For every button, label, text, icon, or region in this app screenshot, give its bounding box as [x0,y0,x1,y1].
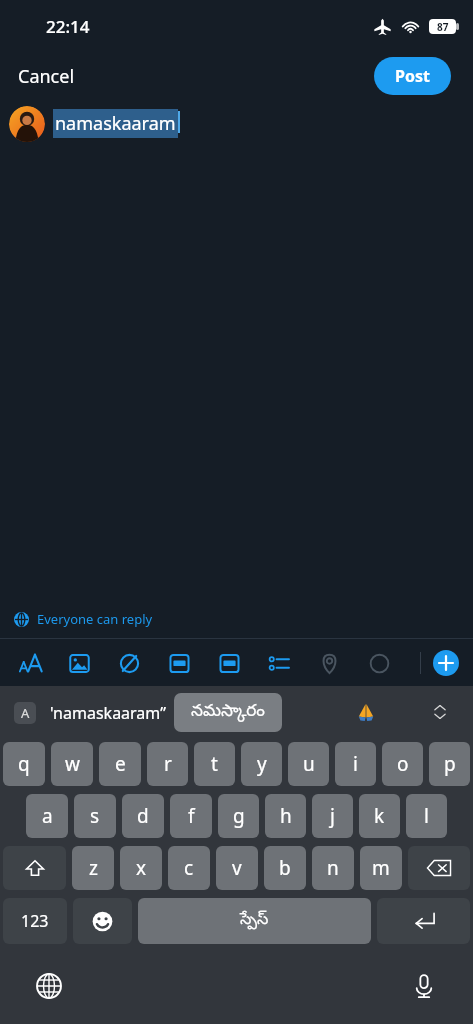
button[interactable]: 123 [3,898,67,944]
button[interactable]: g [218,794,259,838]
staticText: r [164,751,172,777]
button[interactable]: d [122,794,164,838]
button[interactable]: A [14,702,36,724]
staticText: o [397,751,409,777]
staticText: z [89,855,98,881]
staticText: namaskaaram [55,111,176,136]
staticText: l [424,803,429,829]
staticText: నమస్కారం [191,701,265,724]
staticText: f [188,803,195,829]
button[interactable]: Everyone can reply [0,602,473,638]
button[interactable]: i [335,742,376,786]
staticText: Cancel [18,64,75,89]
staticText: y [257,751,267,777]
button[interactable]: l [406,794,447,838]
staticText: 123 [21,910,49,932]
button[interactable]: Emoji suggestion [354,700,378,724]
button[interactable]: p [429,742,470,786]
button[interactable]: నమస్కారం [174,693,282,732]
staticText: 'namaskaaram” [50,702,166,724]
button[interactable]: m [360,846,402,890]
staticText: b [279,855,291,881]
staticText: Post [395,65,430,87]
button[interactable]: t [194,742,235,786]
staticText: e [115,751,126,777]
button[interactable]: Cancel [0,56,93,97]
staticText: p [444,751,456,777]
button[interactable]: Go live [154,641,204,685]
button[interactable]: q [3,742,45,786]
button[interactable]: k [359,794,400,838]
button[interactable]: Enter [377,898,470,944]
button[interactable]: Add poll [254,641,304,685]
button[interactable]: y [241,742,282,786]
button[interactable]: z [72,846,114,890]
staticText: s [90,803,100,829]
staticText: k [374,803,385,829]
button[interactable]: j [312,794,353,838]
button[interactable]: Add photo [54,641,104,685]
button[interactable]: Backspace [408,846,470,890]
staticText: v [232,855,242,881]
button[interactable]: a [26,794,68,838]
staticText: j [330,803,335,829]
button[interactable]: Add location [304,641,354,685]
staticText: c [184,855,194,881]
staticText: i [353,751,358,777]
staticText: a [42,803,53,829]
staticText: స్పేస్ [240,910,269,932]
button[interactable]: Schedule [354,641,404,685]
button[interactable]: w [51,742,93,786]
staticText: g [233,803,245,829]
staticText: d [137,803,149,829]
button[interactable]: Add sticker [104,641,154,685]
button[interactable]: f [170,794,212,838]
button[interactable]: o [382,742,423,786]
staticText: 22:14 [46,15,90,38]
staticText: m [372,855,390,881]
staticText: w [65,751,80,777]
button[interactable]: s [74,794,116,838]
button[interactable]: h [265,794,306,838]
staticText: q [18,751,30,777]
button[interactable]: Add GIF [204,641,254,685]
button[interactable]: Change language [30,967,68,1005]
staticText: u [303,751,315,777]
staticText: A [21,704,30,722]
button[interactable]: స్పేస్ [138,898,371,944]
button[interactable]: x [120,846,162,890]
staticText: 87 [437,20,449,34]
button[interactable]: Shift [3,846,66,890]
button[interactable]: n [312,846,354,890]
button[interactable]: 'namaskaaram” [46,696,170,730]
staticText: h [280,803,292,829]
staticText: Everyone can reply [37,610,153,628]
button[interactable]: v [216,846,258,890]
staticText: n [327,855,339,881]
button[interactable]: Voice input [405,967,443,1005]
button[interactable]: b [264,846,306,890]
button[interactable]: Post [374,57,451,95]
button[interactable]: Expand suggestions [425,697,455,727]
button[interactable]: Emoji [73,898,132,944]
button[interactable]: r [147,742,188,786]
button[interactable] [9,106,45,142]
staticText: t [211,751,218,777]
button[interactable]: e [99,742,141,786]
staticText: x [136,855,147,881]
button[interactable]: u [288,742,329,786]
button[interactable]: Text formatting [4,641,54,685]
button[interactable]: Add post [433,650,459,676]
button[interactable]: c [168,846,210,890]
button[interactable]: namaskaaram [53,109,178,138]
